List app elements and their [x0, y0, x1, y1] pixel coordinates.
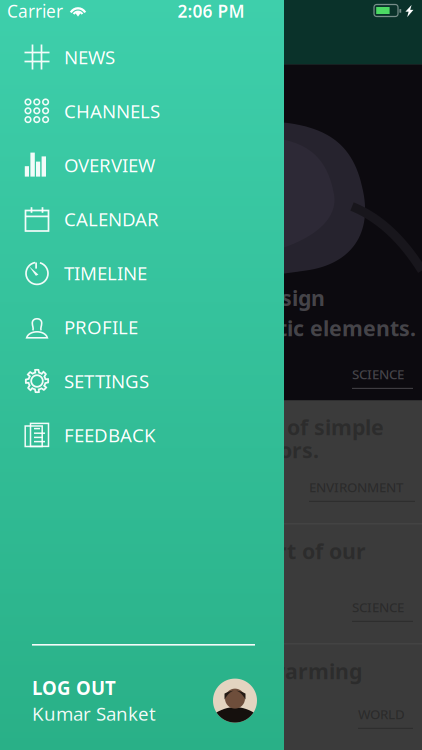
staticText: SETTINGS [64, 369, 149, 393]
button[interactable]: NEWS [0, 30, 284, 84]
staticText: The use of simple [198, 413, 384, 441]
staticText: Global warming [195, 657, 362, 685]
staticText: Kumar Sanket [32, 701, 156, 726]
button[interactable]: CHANNELS [0, 84, 284, 138]
staticText: WORLD [358, 705, 405, 723]
button[interactable]: OVERVIEW [0, 138, 284, 192]
staticText: pastel colors. [178, 436, 319, 464]
staticText: CALENDAR [64, 207, 159, 231]
button[interactable]: SETTINGS [0, 354, 284, 408]
staticText: 2:06 PM [177, 0, 244, 22]
staticText: OVERVIEW [64, 153, 155, 177]
staticText: LOG OUT [32, 675, 116, 700]
button[interactable]: FEEDBACK [0, 408, 284, 462]
staticText: SCIENCE [352, 365, 404, 383]
staticText: SCIENCE [352, 598, 404, 616]
button[interactable]: TIMELINE [0, 246, 284, 300]
staticText: with artistic elements. [176, 314, 416, 342]
staticText: Nature is a part of our [128, 537, 366, 565]
staticText: Carrier [7, 0, 63, 22]
staticText: Simple design [178, 283, 325, 312]
staticText: TIMELINE [64, 261, 147, 285]
staticText: NEWS [64, 45, 115, 69]
button[interactable]: PROFILE [0, 300, 284, 354]
staticText: FEEDBACK [64, 423, 156, 447]
button[interactable]: CALENDAR [0, 192, 284, 246]
staticText: CHANNELS [64, 99, 160, 123]
staticText: ENVIRONMENT [309, 478, 403, 496]
staticText: PROFILE [64, 315, 138, 339]
button[interactable]: LOG OUT [0, 678, 284, 724]
